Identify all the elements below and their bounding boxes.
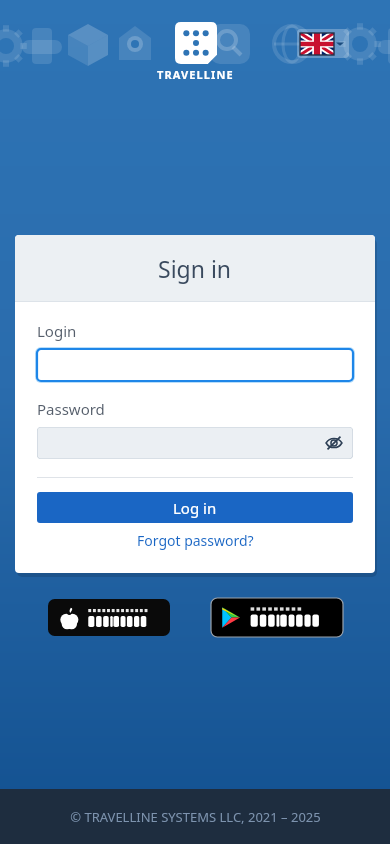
staticText: Forgot password?	[137, 531, 254, 550]
staticText: Login	[37, 321, 77, 341]
staticText: Sign in	[158, 253, 232, 284]
staticText: TRAVELLINE	[157, 67, 234, 82]
button[interactable]: Select language	[297, 29, 349, 58]
button[interactable]: Forgot password?	[137, 531, 254, 550]
staticText: Password	[37, 399, 105, 419]
button[interactable]	[37, 349, 353, 381]
staticText: Log in	[173, 498, 217, 518]
button[interactable]: Show password	[37, 427, 353, 459]
button[interactable]: Log in	[37, 492, 353, 523]
button[interactable]: Get it on Google Play	[211, 598, 343, 637]
staticText: © TRAVELLINE SYSTEMS LLC, 2021 – 2025	[70, 808, 321, 826]
button[interactable]: Show password	[323, 432, 345, 454]
button[interactable]: Download on the App Store	[48, 599, 170, 636]
